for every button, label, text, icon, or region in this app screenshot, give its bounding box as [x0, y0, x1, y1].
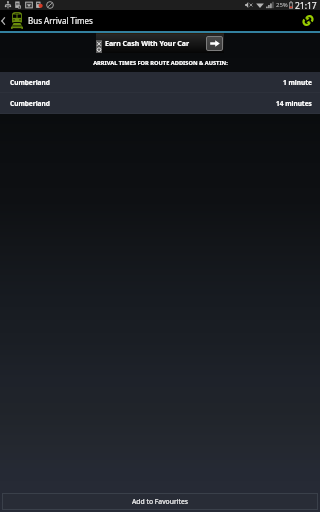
staticText: Cumberland — [10, 99, 50, 108]
staticText: 1 minute — [283, 78, 312, 87]
button[interactable]: Cumberland — [0, 93, 320, 113]
button[interactable]: Close advertisement — [96, 40, 102, 53]
staticText: 25% — [276, 1, 288, 9]
staticText: 14 minutes — [276, 99, 312, 108]
staticText: 21:17 — [295, 0, 317, 10]
button[interactable]: Close advertisement — [96, 33, 224, 53]
button[interactable]: Refresh — [295, 10, 320, 31]
staticText: Add to Favourites — [132, 497, 189, 506]
button[interactable]: Add to Favourites — [2, 493, 318, 510]
staticText: Cumberland — [10, 78, 50, 87]
button[interactable]: Open advertisement — [206, 36, 223, 51]
button[interactable]: Cumberland — [0, 72, 320, 92]
staticText: ARRIVAL TIMES FOR ROUTE ADDISON & AUSTIN… — [93, 59, 228, 67]
staticText: Earn Cash With Your Car — [105, 39, 190, 49]
button[interactable]: Navigate up — [0, 10, 23, 31]
staticText: Bus Arrival Times — [28, 15, 93, 26]
